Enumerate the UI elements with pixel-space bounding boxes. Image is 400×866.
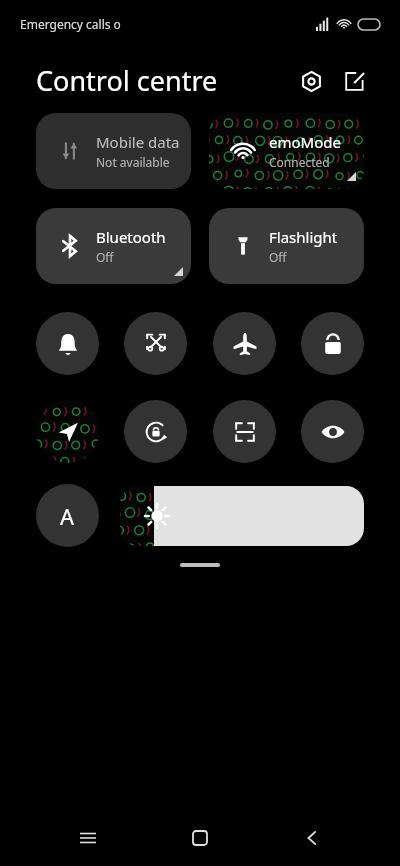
staticText: Flashlight (269, 227, 338, 247)
staticText: Mobile data (96, 132, 180, 152)
button[interactable]: Auto brightness (36, 484, 99, 547)
button[interactable]: Back (288, 814, 336, 862)
button[interactable]: Flashlight (209, 208, 364, 284)
button[interactable]: Screen lock (301, 312, 364, 375)
staticText: Bluetooth (96, 227, 166, 247)
button[interactable]: Edit (338, 64, 372, 98)
button[interactable]: Recents (64, 814, 112, 862)
button[interactable]: Home (176, 814, 224, 862)
staticText: emoMode (269, 132, 341, 152)
staticText: A (60, 501, 75, 531)
button[interactable]: Location (36, 400, 99, 463)
button[interactable]: Aeroplane mode (213, 312, 276, 375)
button[interactable]: Mobile data (36, 113, 191, 189)
button[interactable]: Cast (124, 312, 187, 375)
button[interactable]: Silent mode (36, 312, 99, 375)
button[interactable]: emoMode (209, 113, 364, 189)
staticText: Not available (96, 154, 170, 170)
staticText: Connected (269, 154, 330, 170)
staticText: Emergency calls o (20, 16, 316, 32)
button[interactable]: Scan QR code (213, 400, 276, 463)
button[interactable]: Settings (294, 64, 328, 98)
staticText: Off (96, 249, 114, 265)
button[interactable]: Auto rotate (124, 400, 187, 463)
button[interactable]: Eye comfort (301, 400, 364, 463)
button[interactable]: Brightness (120, 486, 364, 546)
staticText: Off (269, 249, 287, 265)
button[interactable]: Bluetooth (36, 208, 191, 284)
staticText: Control centre (36, 62, 294, 99)
